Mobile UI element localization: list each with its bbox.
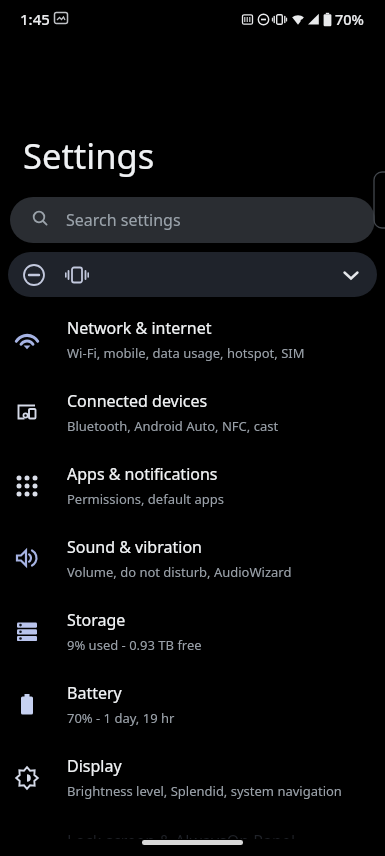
staticText: Connected devices <box>67 390 208 412</box>
button[interactable]: Network & internet <box>0 303 385 376</box>
staticText: Sound & vibration <box>67 536 202 558</box>
staticText: Permissions, default apps <box>67 490 224 508</box>
staticText: Battery <box>67 682 122 704</box>
staticText: Storage <box>67 609 126 631</box>
staticText: Bluetooth, Android Auto, NFC, cast <box>67 417 279 435</box>
staticText: Brightness level, Splendid, system navig… <box>67 782 342 800</box>
button[interactable]: Connected devices <box>0 376 385 449</box>
staticText: 9% used - 0.93 TB free <box>67 636 202 654</box>
staticText: Settings <box>23 132 155 179</box>
button[interactable] <box>8 252 377 297</box>
staticText: 70% - 1 day, 19 hr <box>67 709 175 727</box>
staticText: Wi-Fi, mobile, data usage, hotspot, SIM <box>67 344 305 362</box>
button[interactable]: Storage <box>0 595 385 668</box>
button[interactable]: Search settings <box>10 197 375 243</box>
button[interactable]: Sound & vibration <box>0 522 385 595</box>
button[interactable]: Battery <box>0 668 385 741</box>
staticText: Network & internet <box>67 317 212 339</box>
staticText: Display <box>67 755 122 777</box>
staticText: Apps & notifications <box>67 463 218 485</box>
staticText: Search settings <box>66 209 181 231</box>
staticText: Volume, do not disturb, AudioWizard <box>67 563 292 581</box>
staticText: 70% <box>335 9 364 29</box>
staticText: 1:45 <box>20 9 50 29</box>
button[interactable]: Apps & notifications <box>0 449 385 522</box>
staticText: Lock screen & AlwaysOn Panel <box>67 830 296 852</box>
button[interactable]: Display <box>0 741 385 814</box>
